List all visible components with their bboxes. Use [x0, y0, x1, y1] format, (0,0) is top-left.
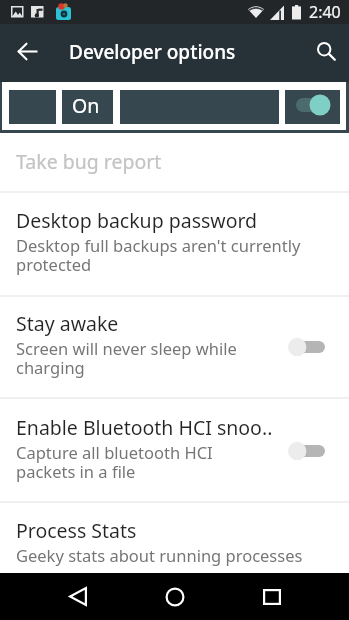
- button[interactable]: Back: [53, 573, 102, 620]
- button[interactable]: Toggle developer options: [285, 91, 340, 125]
- button[interactable]: Developer options icon: [9, 91, 56, 125]
- button[interactable]: Enable Bluetooth HCI snoo..: [0, 399, 349, 501]
- button[interactable]: Search: [307, 32, 345, 70]
- staticText: Process Stats: [16, 517, 137, 544]
- staticText: Developer options: [69, 39, 236, 65]
- button[interactable]: Recent apps: [247, 573, 296, 620]
- button[interactable]: On: [62, 91, 113, 125]
- button[interactable]: Process Stats: [0, 503, 349, 573]
- button[interactable]: Toggle Stay awake: [282, 329, 330, 365]
- staticText: Stay awake: [16, 310, 119, 337]
- staticText: Capture all bluetooth HCI packets in a f…: [16, 441, 261, 482]
- button[interactable]: Navigate up: [8, 32, 46, 70]
- button[interactable]: Developer options: [120, 91, 279, 125]
- staticText: Take bug report: [16, 148, 162, 175]
- staticText: Enable Bluetooth HCI snoo..: [16, 414, 273, 441]
- staticText: Desktop full backups aren't currently pr…: [16, 234, 306, 275]
- button[interactable]: Home: [150, 573, 199, 620]
- staticText: Desktop backup password: [16, 207, 258, 234]
- button[interactable]: Take bug report: [0, 133, 349, 191]
- button[interactable]: Toggle Enable Bluetooth HCI snoo..: [282, 433, 330, 469]
- staticText: Geeky stats about running processes: [16, 544, 316, 566]
- button[interactable]: Stay awake: [0, 297, 349, 397]
- staticText: Screen will never sleep while charging: [16, 337, 261, 378]
- staticText: 2:40: [309, 1, 341, 23]
- staticText: On: [72, 92, 100, 119]
- button[interactable]: Desktop backup password: [0, 193, 349, 295]
